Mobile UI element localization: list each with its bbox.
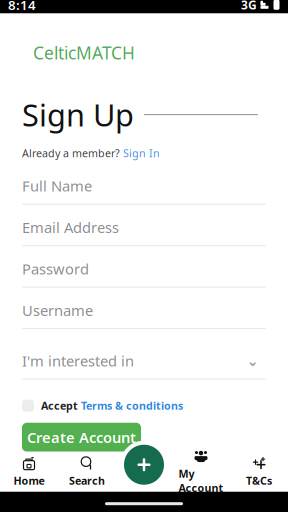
staticText: Sign In: [123, 146, 160, 160]
button[interactable]: Terms & conditions: [81, 399, 183, 413]
staticText: 8:14: [8, 0, 36, 14]
button[interactable]: Create Account: [22, 423, 141, 452]
staticText: Search: [69, 474, 105, 488]
staticText: 3G: [241, 0, 257, 13]
button[interactable]: Add: [120, 441, 168, 489]
button[interactable]: Search: [58, 452, 116, 492]
staticText: Email Address: [22, 218, 119, 237]
staticText: Terms & conditions: [81, 399, 183, 413]
staticText: Already a member?: [22, 146, 120, 160]
staticText: I'm interested in: [22, 351, 134, 371]
button[interactable]: Sign In: [123, 146, 160, 160]
staticText: My Account: [178, 467, 223, 495]
staticText: Create Account: [27, 427, 136, 447]
staticText: Home: [13, 474, 44, 488]
staticText: T&Cs: [246, 474, 272, 488]
button[interactable]: Home: [0, 452, 58, 492]
staticText: Accept: [41, 399, 78, 413]
button[interactable]: T&Cs: [230, 452, 288, 492]
staticText: Username: [22, 301, 93, 320]
button[interactable]: Accept terms checkbox: [22, 400, 34, 412]
button[interactable]: My Account: [172, 452, 230, 492]
staticText: Full Name: [22, 176, 92, 196]
staticText: CelticMATCH: [33, 41, 135, 64]
button[interactable]: I'm interested in: [0, 351, 288, 380]
staticText: Sign Up: [22, 94, 134, 135]
staticText: Password: [22, 259, 89, 279]
staticText: ⌄: [246, 352, 258, 369]
